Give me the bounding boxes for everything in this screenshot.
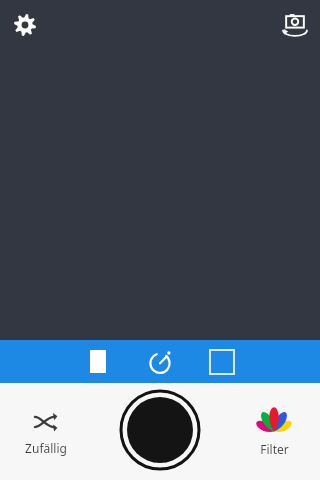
button[interactable]: Timer xyxy=(138,340,182,383)
button[interactable]: Shutter xyxy=(120,390,200,470)
button[interactable]: Zufällig xyxy=(8,407,84,456)
staticText: Filter xyxy=(260,441,289,457)
button[interactable]: Filter xyxy=(236,406,312,457)
button[interactable]: Square format xyxy=(200,340,244,383)
button[interactable]: Portrait format xyxy=(76,340,120,383)
button[interactable]: Settings xyxy=(6,6,44,44)
button[interactable]: Switch camera xyxy=(276,6,314,44)
staticText: Zufällig xyxy=(25,440,67,456)
